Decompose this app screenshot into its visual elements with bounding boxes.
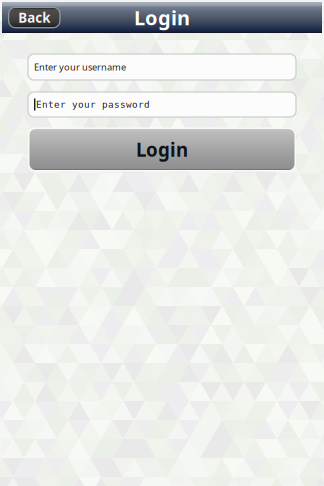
- staticText: Login: [136, 137, 188, 162]
- button[interactable]: Back: [8, 7, 61, 28]
- staticText: Login: [134, 4, 190, 31]
- staticText: Back: [18, 9, 50, 26]
- staticText: Enter your password: [36, 99, 150, 110]
- staticText: Enter your username: [34, 61, 126, 73]
- button[interactable]: Login: [28, 127, 296, 171]
